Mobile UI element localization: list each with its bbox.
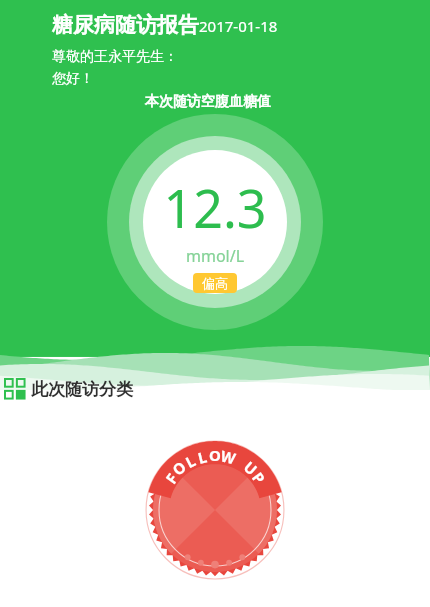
staticText: mmol/L bbox=[186, 245, 245, 267]
staticText: O bbox=[168, 456, 190, 479]
staticText: 12.3 bbox=[155, 172, 275, 243]
button[interactable]: 偏高 bbox=[193, 273, 237, 293]
staticText: 尊敬的王永平先生： bbox=[52, 48, 178, 66]
staticText: O bbox=[209, 445, 221, 465]
button[interactable]: 并发症 随访分类 bbox=[145, 440, 285, 580]
button[interactable]: 此次随访分类 bbox=[0, 378, 430, 400]
staticText: 糖尿病随访报告 bbox=[52, 12, 199, 38]
staticText: 2017-01-18 bbox=[199, 16, 278, 36]
staticText: W bbox=[219, 445, 238, 468]
staticText: L bbox=[196, 446, 209, 468]
staticText: F bbox=[161, 468, 182, 487]
staticText: 此次随访分类 bbox=[31, 379, 133, 400]
staticText: P bbox=[248, 468, 270, 488]
staticText: 偏高 bbox=[202, 275, 228, 291]
staticText: L bbox=[182, 450, 199, 472]
staticText: U bbox=[240, 456, 262, 479]
staticText: 本次随访空腹血糖值 bbox=[145, 93, 271, 111]
staticText: 您好！ bbox=[52, 70, 94, 88]
